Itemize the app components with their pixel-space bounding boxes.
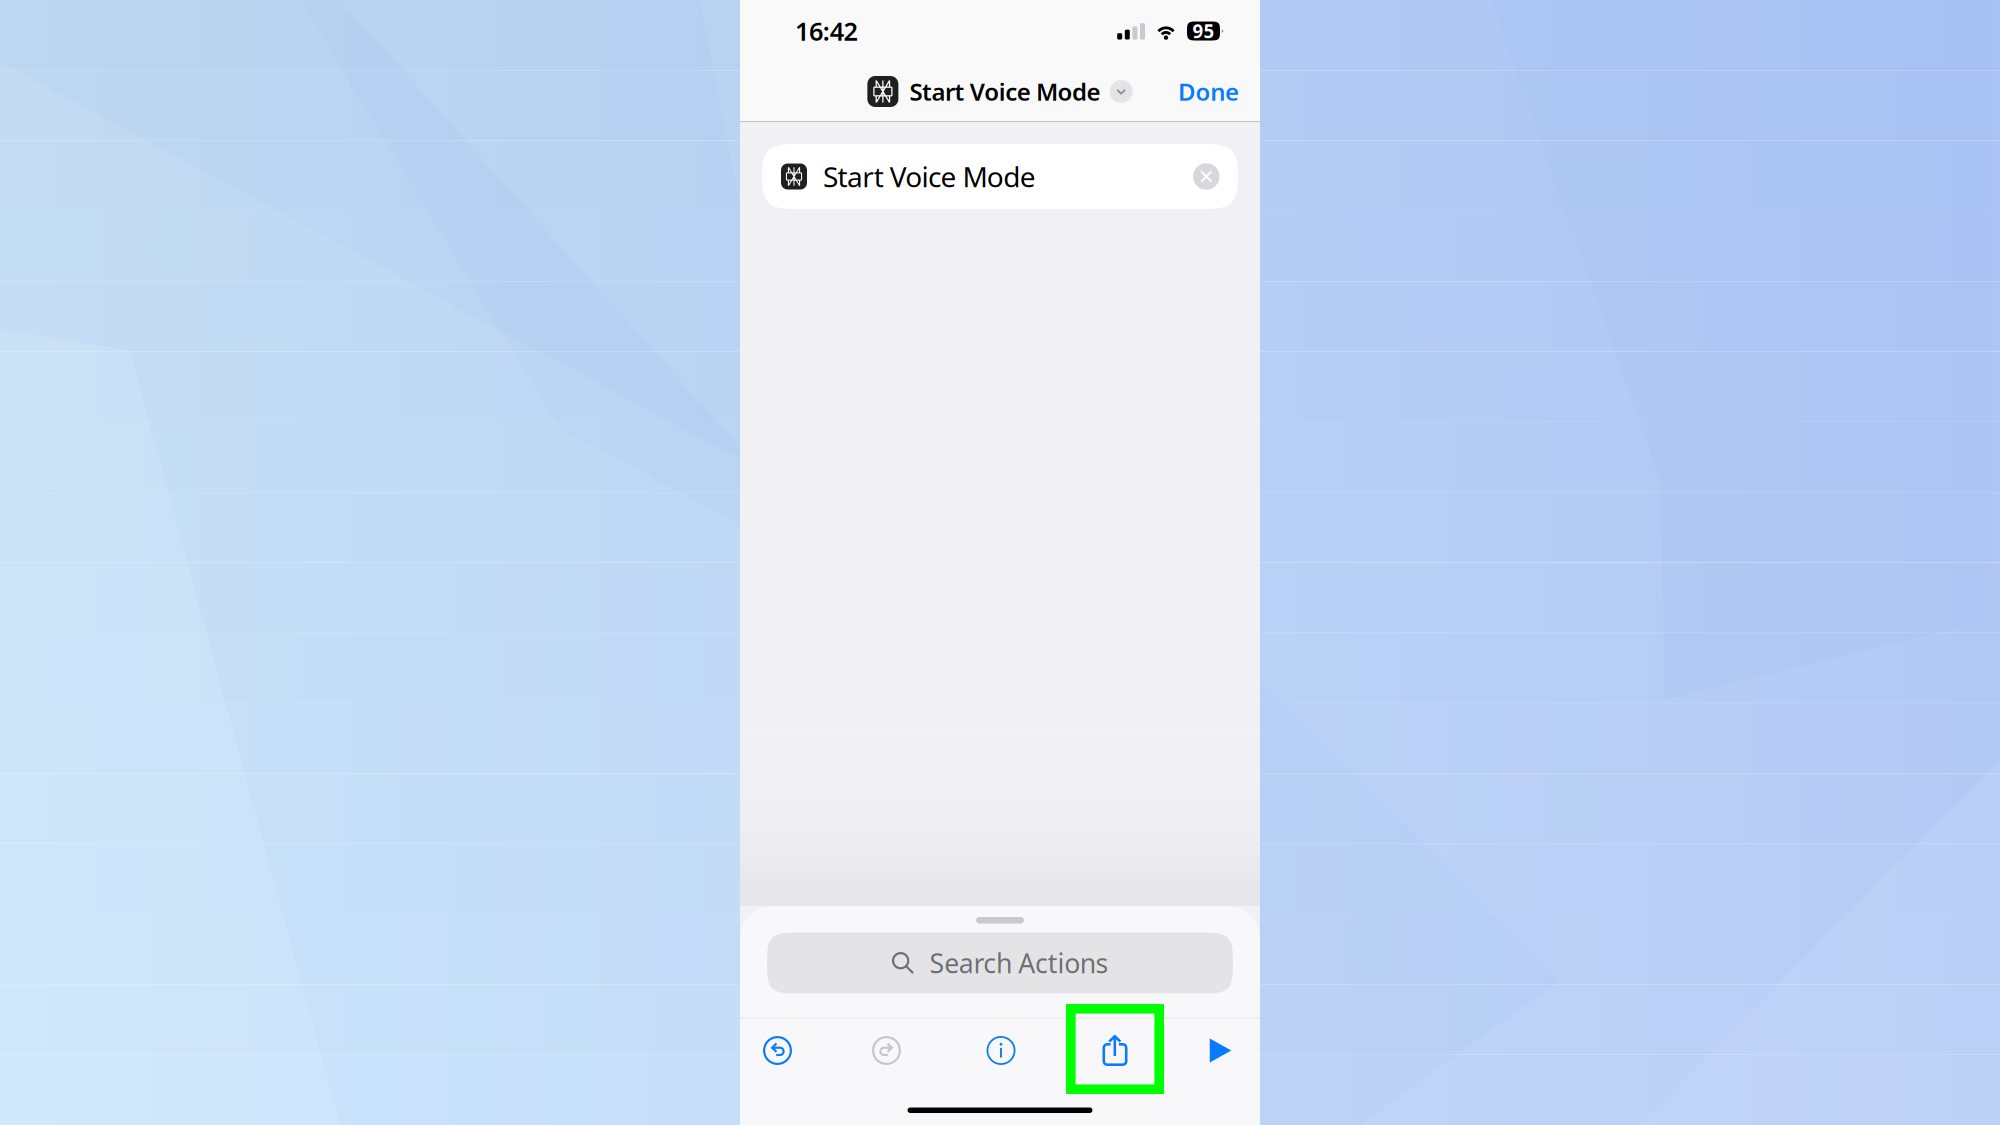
button[interactable]: Share: [1044, 1018, 1186, 1082]
staticText: 16:42: [795, 14, 858, 48]
button[interactable]: Search Actions: [767, 932, 1233, 993]
staticText: Start Voice Mode: [823, 158, 1036, 195]
button[interactable]: Start Voice Mode: [867, 68, 1133, 115]
staticText: Search Actions: [929, 945, 1108, 981]
button[interactable]: Done: [1162, 67, 1260, 116]
button[interactable]: Shortcut details: [958, 1018, 1044, 1082]
button[interactable]: Redo: [815, 1018, 958, 1082]
staticText: 95: [1192, 19, 1214, 43]
staticText: Done: [1178, 76, 1239, 107]
button[interactable]: Run shortcut: [1186, 1018, 1255, 1082]
staticText: Start Voice Mode: [909, 76, 1101, 107]
button[interactable]: Start Voice Mode: [762, 144, 1238, 209]
button[interactable]: Undo: [740, 1018, 815, 1082]
